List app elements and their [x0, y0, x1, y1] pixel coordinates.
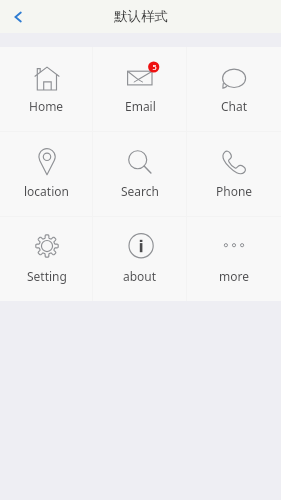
staticText: Search — [121, 183, 159, 199]
staticText: 默认样式 — [114, 8, 168, 25]
button[interactable]: about — [93, 217, 187, 301]
staticText: Chat — [221, 98, 248, 114]
button[interactable]: Home — [0, 47, 93, 131]
staticText: Email — [125, 98, 156, 114]
staticText: 5 — [152, 62, 157, 72]
button[interactable]: Phone — [187, 132, 281, 216]
button[interactable]: Chat — [187, 47, 281, 131]
button[interactable]: Setting — [0, 217, 93, 301]
button[interactable]: Back — [0, 0, 36, 33]
button[interactable]: location — [0, 132, 93, 216]
staticText: Home — [29, 98, 64, 114]
button[interactable]: 5 — [93, 47, 187, 131]
staticText: Setting — [27, 268, 67, 284]
button[interactable]: more — [187, 217, 281, 301]
staticText: Phone — [216, 183, 253, 199]
button[interactable]: Search — [93, 132, 187, 216]
staticText: more — [219, 268, 249, 284]
staticText: location — [24, 183, 69, 199]
staticText: about — [123, 268, 157, 284]
